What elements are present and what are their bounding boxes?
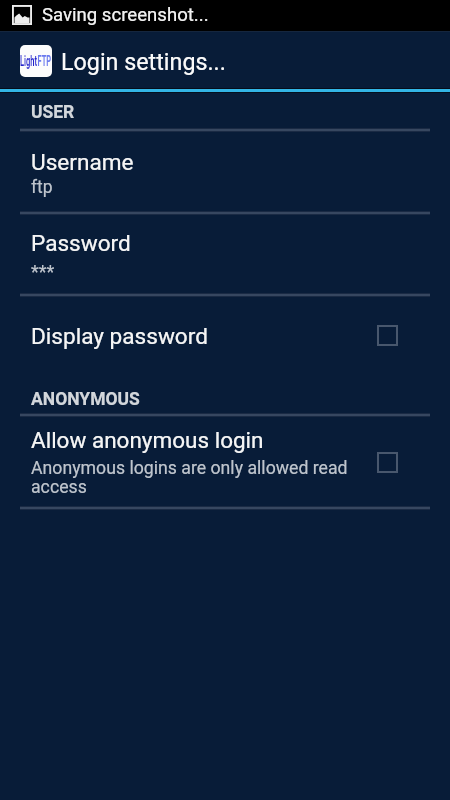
button[interactable]: Toggle checkbox xyxy=(371,446,404,479)
staticText: Password xyxy=(31,230,131,256)
staticText: ANONYMOUS xyxy=(31,389,140,410)
staticText: Username xyxy=(31,149,134,175)
button[interactable]: Light xyxy=(0,31,450,88)
staticText: Display password xyxy=(31,323,208,349)
button[interactable]: Allow anonymous login xyxy=(0,416,450,507)
button[interactable]: Display password xyxy=(0,296,450,374)
button[interactable]: Username xyxy=(0,131,450,212)
staticText: Anonymous logins are only allowed read a… xyxy=(31,458,355,497)
staticText: ftp xyxy=(31,177,53,198)
staticText: FTP xyxy=(37,52,51,70)
staticText: Saving screenshot... xyxy=(42,4,209,26)
staticText: Login settings... xyxy=(61,48,226,75)
staticText: Allow anonymous login xyxy=(31,427,264,453)
staticText: USER xyxy=(31,102,75,123)
staticText: *** xyxy=(31,261,55,282)
button[interactable]: Password xyxy=(0,214,450,294)
button[interactable]: Toggle checkbox xyxy=(371,319,404,352)
staticText: Light xyxy=(20,52,37,70)
other: Screenshot notification xyxy=(12,5,32,25)
